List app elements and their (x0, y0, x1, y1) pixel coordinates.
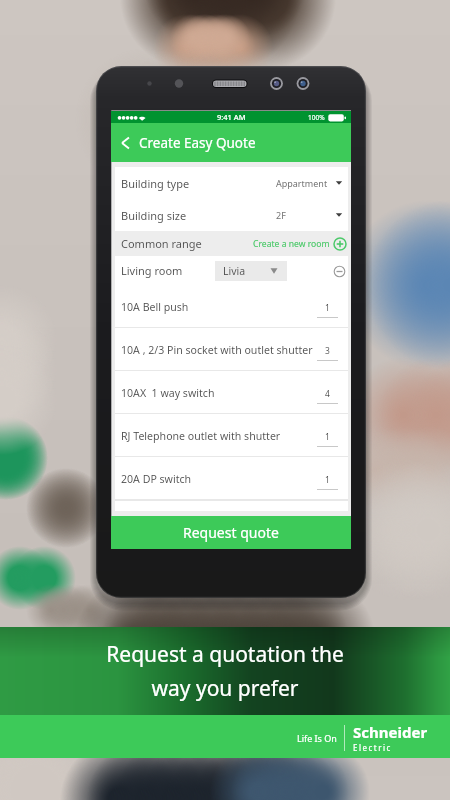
staticText: 1 (325, 431, 330, 443)
staticText: Request a quotation the (106, 640, 344, 669)
staticText: Life Is On (297, 732, 337, 744)
staticText: Create a new room (253, 238, 330, 250)
button[interactable]: Request quote (111, 516, 351, 549)
button[interactable]: Building size (115, 199, 348, 231)
staticText: 10AX 1 way switch (121, 386, 215, 400)
staticText: Request quote (183, 523, 279, 542)
staticText: RJ Telephone outlet with shutter (121, 429, 281, 443)
staticText: 100% (308, 113, 325, 122)
button[interactable]: Livia (215, 261, 287, 281)
button[interactable]: Building type (115, 167, 348, 199)
staticText: Create Easy Quote (139, 134, 256, 152)
staticText: 1 (325, 474, 330, 486)
button[interactable]: 20A DP switch (115, 457, 348, 500)
button[interactable]: 10A Bell push (115, 285, 348, 328)
staticText: 20A DP switch (121, 472, 192, 486)
staticText: 2F (276, 209, 286, 221)
staticText: Building type (121, 176, 190, 191)
staticText: Living room (121, 263, 183, 278)
button[interactable]: 10AX 1 way switch (115, 371, 348, 414)
staticText: Appartment (276, 177, 328, 189)
staticText: Livia (223, 264, 246, 278)
staticText: 3 (325, 345, 330, 357)
staticText: Common range (121, 236, 202, 251)
staticText: 4 (325, 388, 330, 400)
staticText: Schneider (353, 722, 428, 742)
staticText: Electric (353, 742, 392, 753)
button[interactable]: 10A , 2/3 Pin socket with outlet shutter (115, 328, 348, 371)
button[interactable]: RJ Telephone outlet with shutter (115, 414, 348, 457)
staticText: 1 (325, 302, 330, 314)
button[interactable]: Remove room (332, 264, 346, 278)
button[interactable]: Back (111, 123, 137, 162)
staticText: 9:41 AM (217, 112, 246, 122)
staticText: 10A Bell push (121, 300, 189, 314)
staticText: 10A , 2/3 Pin socket with outlet shutter (121, 343, 313, 357)
staticText: Building size (121, 208, 187, 223)
button[interactable]: Common range (115, 231, 348, 256)
staticText: way you prefer (151, 674, 299, 703)
